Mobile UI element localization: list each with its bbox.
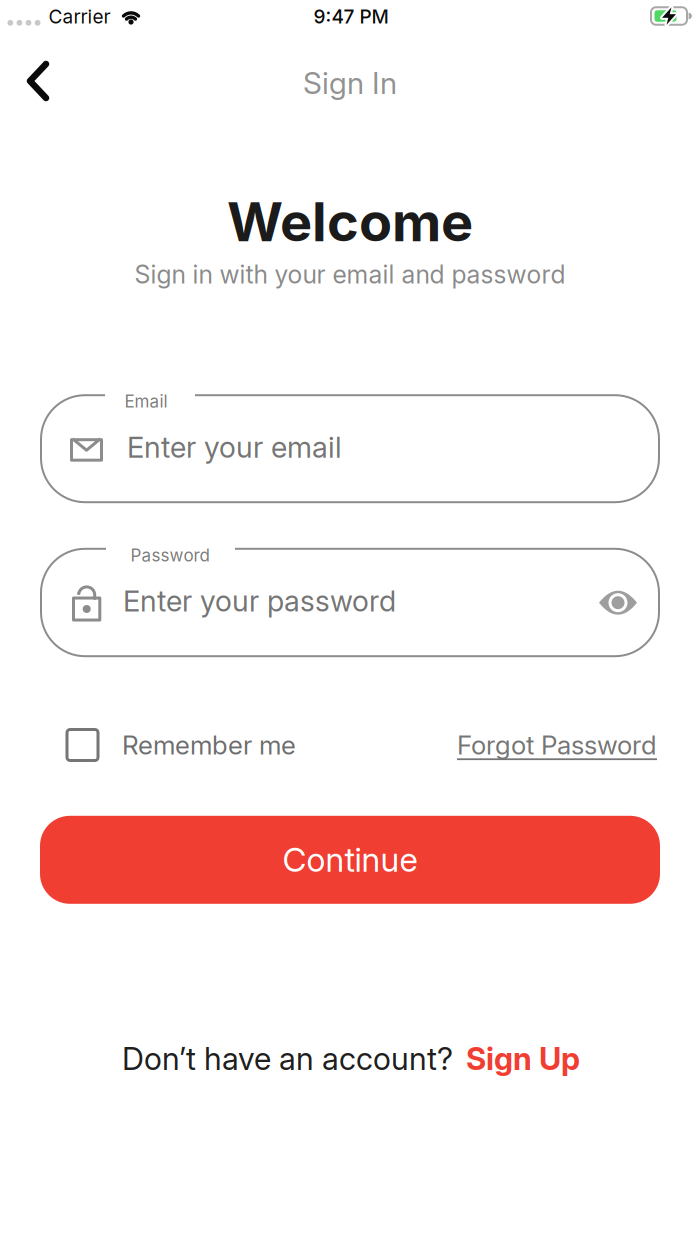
button[interactable]: Continue — [40, 816, 660, 904]
button[interactable]: Forgot Password — [457, 729, 657, 761]
button[interactable]: Back — [16, 59, 60, 103]
staticText: Sign In — [303, 65, 397, 101]
staticText: Continue — [282, 840, 417, 880]
staticText: Email — [124, 391, 167, 412]
button[interactable]: Remember me — [67, 729, 296, 761]
staticText: Welcome — [227, 189, 473, 254]
staticText: Don’t have an account? — [122, 1040, 453, 1077]
button[interactable]: Show password — [596, 581, 640, 625]
staticText: 9:47 PM — [313, 5, 388, 28]
button[interactable]: Sign Up — [466, 1040, 580, 1077]
button[interactable]: Email, Enter your email — [40, 394, 660, 503]
staticText: Password — [130, 545, 209, 566]
staticText: Carrier — [48, 5, 110, 28]
staticText: Forgot Password — [457, 729, 657, 761]
staticText: Enter your password — [123, 583, 396, 619]
staticText: Remember me — [122, 729, 296, 761]
button[interactable]: Password, Enter your password — [40, 548, 660, 657]
staticText: Sign Up — [466, 1040, 580, 1077]
staticText: Enter your email — [127, 430, 342, 465]
staticText: Sign in with your email and password — [134, 259, 565, 290]
